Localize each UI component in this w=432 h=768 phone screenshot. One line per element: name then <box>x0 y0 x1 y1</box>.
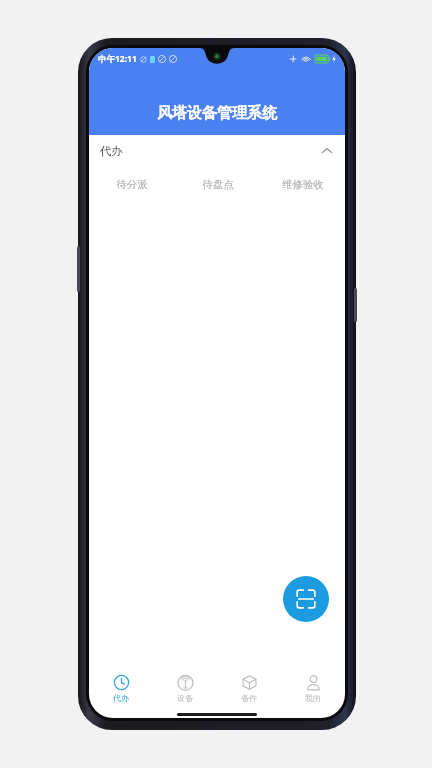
staticText: 中午12:11 <box>98 53 137 65</box>
staticText: 备件 <box>241 693 257 703</box>
button[interactable]: 待分派 <box>89 167 175 201</box>
button[interactable]: 代办 <box>89 135 345 167</box>
staticText: 代办 <box>100 144 123 158</box>
button[interactable]: 维修验收 <box>260 167 345 201</box>
button[interactable]: 我的 <box>281 666 345 710</box>
staticText: 我的 <box>305 693 321 703</box>
button[interactable]: 代办 <box>89 666 153 710</box>
staticText: 代办 <box>113 693 129 703</box>
staticText: 设备 <box>177 693 193 703</box>
staticText: 维修验收 <box>282 178 324 191</box>
button[interactable]: 设备 <box>153 666 217 710</box>
other: Collapse <box>320 144 334 158</box>
staticText: 待盘点 <box>202 178 234 191</box>
button[interactable]: 待盘点 <box>175 167 260 201</box>
button[interactable]: Scan code <box>283 576 329 622</box>
button[interactable]: 备件 <box>217 666 281 710</box>
staticText: 待分派 <box>116 178 148 191</box>
staticText: 风塔设备管理系统 <box>157 104 277 123</box>
